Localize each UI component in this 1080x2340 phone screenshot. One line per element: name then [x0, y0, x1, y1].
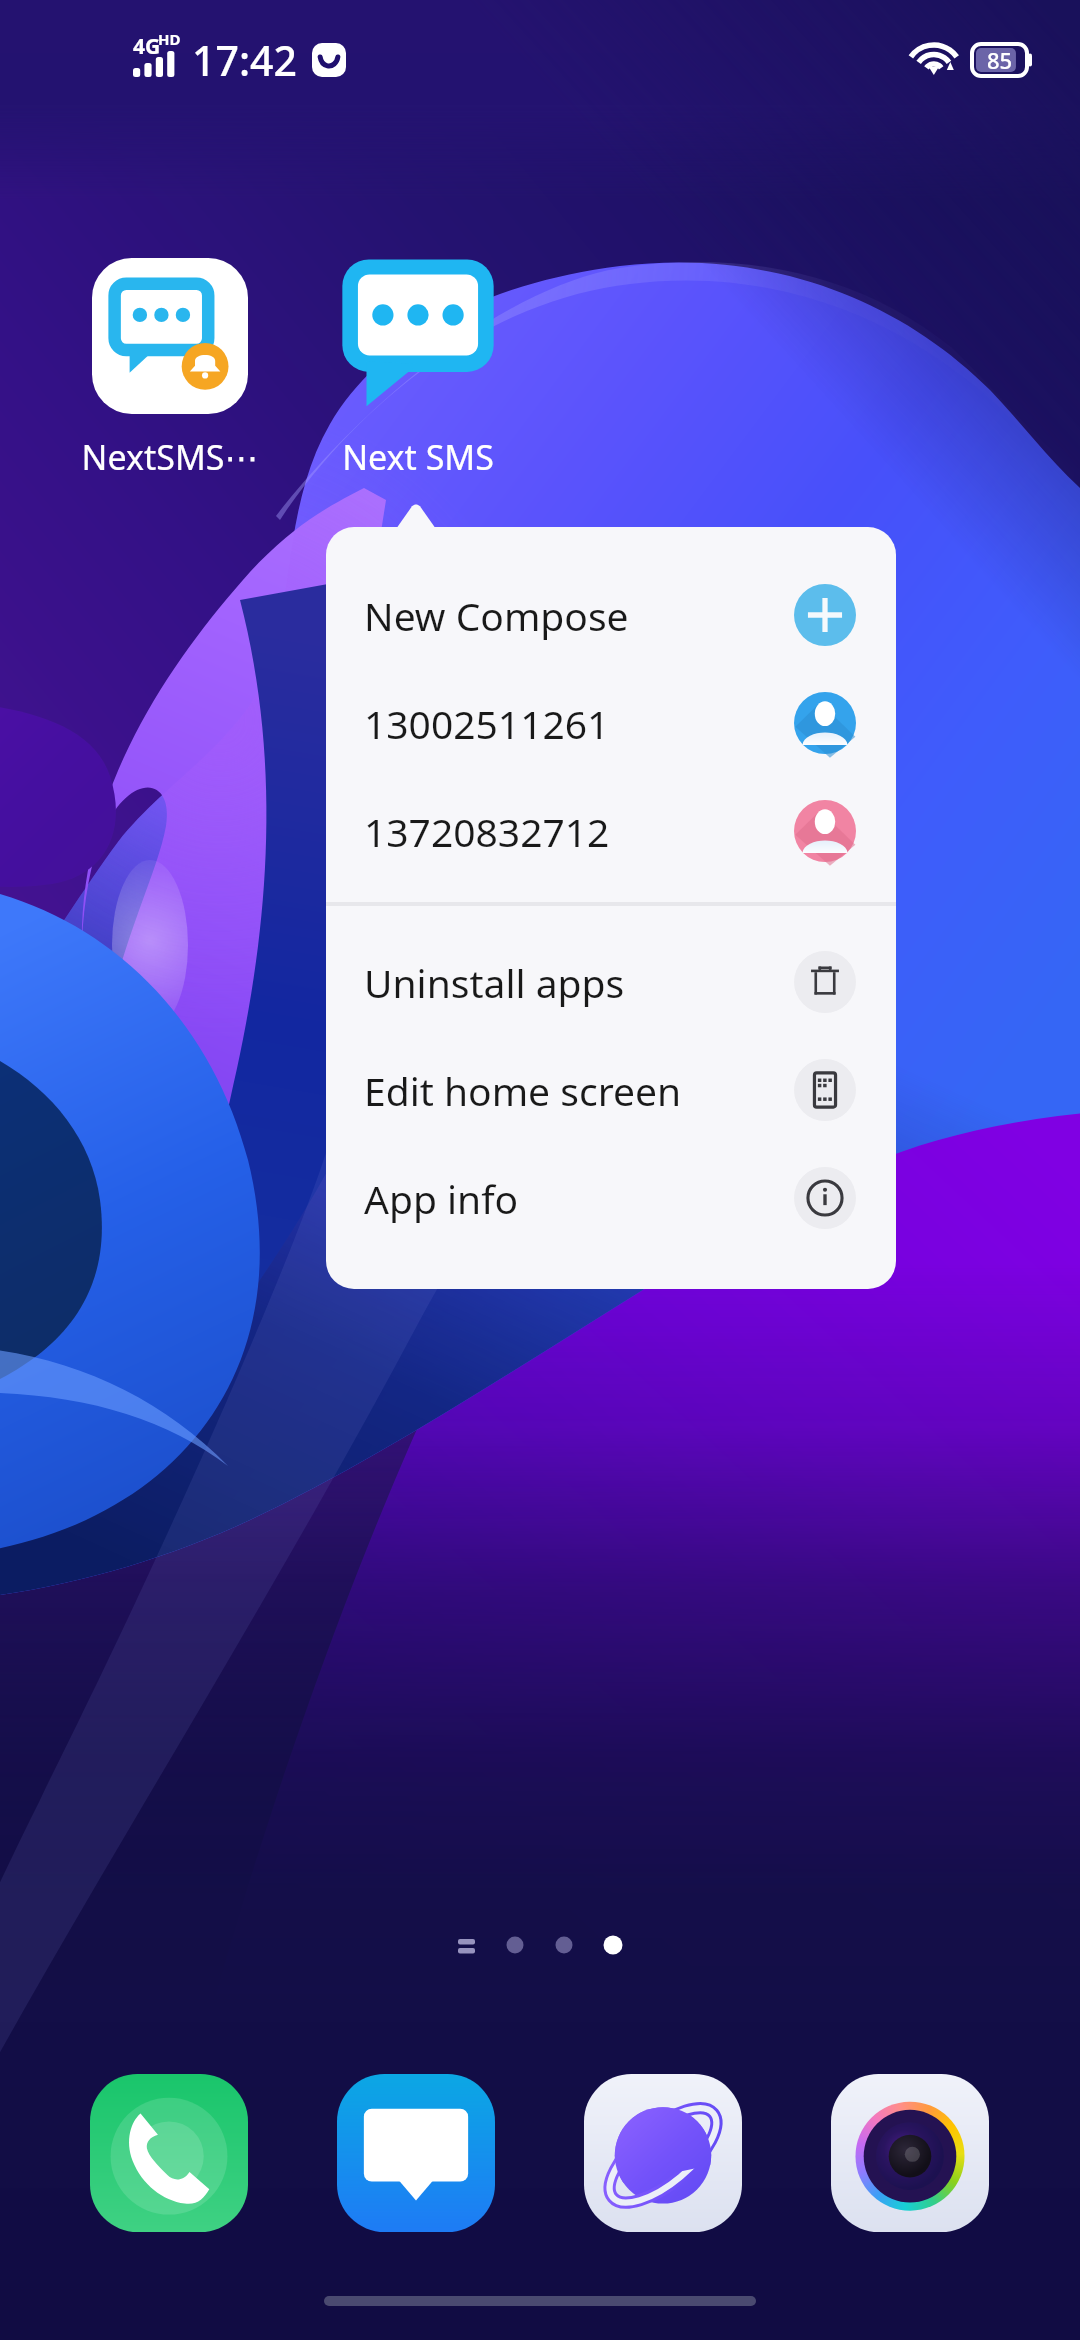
button[interactable]: Next SMS	[258, 258, 578, 414]
button[interactable]: Page 3, current	[588, 1915, 638, 1975]
button[interactable]: 13002511261	[326, 669, 896, 777]
staticText: App info	[364, 1172, 794, 1225]
button[interactable]: New Compose	[326, 561, 896, 669]
button[interactable]: NextSMS⋯	[10, 258, 330, 414]
staticText: 13720832712	[364, 805, 794, 858]
button[interactable]: Page 2	[539, 1915, 589, 1975]
button[interactable]: Uninstall apps	[326, 928, 896, 1036]
button[interactable]: Phone	[90, 2074, 248, 2232]
staticText: 17:42	[192, 32, 297, 88]
button[interactable]: Browser	[584, 2074, 742, 2232]
staticText: Next SMS	[258, 434, 578, 480]
staticText: 4G	[133, 32, 161, 61]
staticText: 13002511261	[364, 697, 794, 750]
button[interactable]: Messages	[337, 2074, 495, 2232]
staticText: NextSMS⋯	[10, 434, 330, 480]
button[interactable]: Edit home screen	[326, 1036, 896, 1144]
button[interactable]: 13720832712	[326, 777, 896, 885]
button[interactable]: App info	[326, 1144, 896, 1252]
staticText: HD	[158, 29, 181, 49]
button[interactable]: Camera	[831, 2074, 989, 2232]
staticText: New Compose	[364, 589, 794, 642]
button[interactable]: Page 1	[490, 1915, 540, 1975]
button[interactable]: All apps	[440, 1915, 490, 1975]
staticText: Edit home screen	[364, 1064, 794, 1117]
staticText: 85	[987, 45, 1013, 75]
staticText: Uninstall apps	[364, 956, 794, 1009]
